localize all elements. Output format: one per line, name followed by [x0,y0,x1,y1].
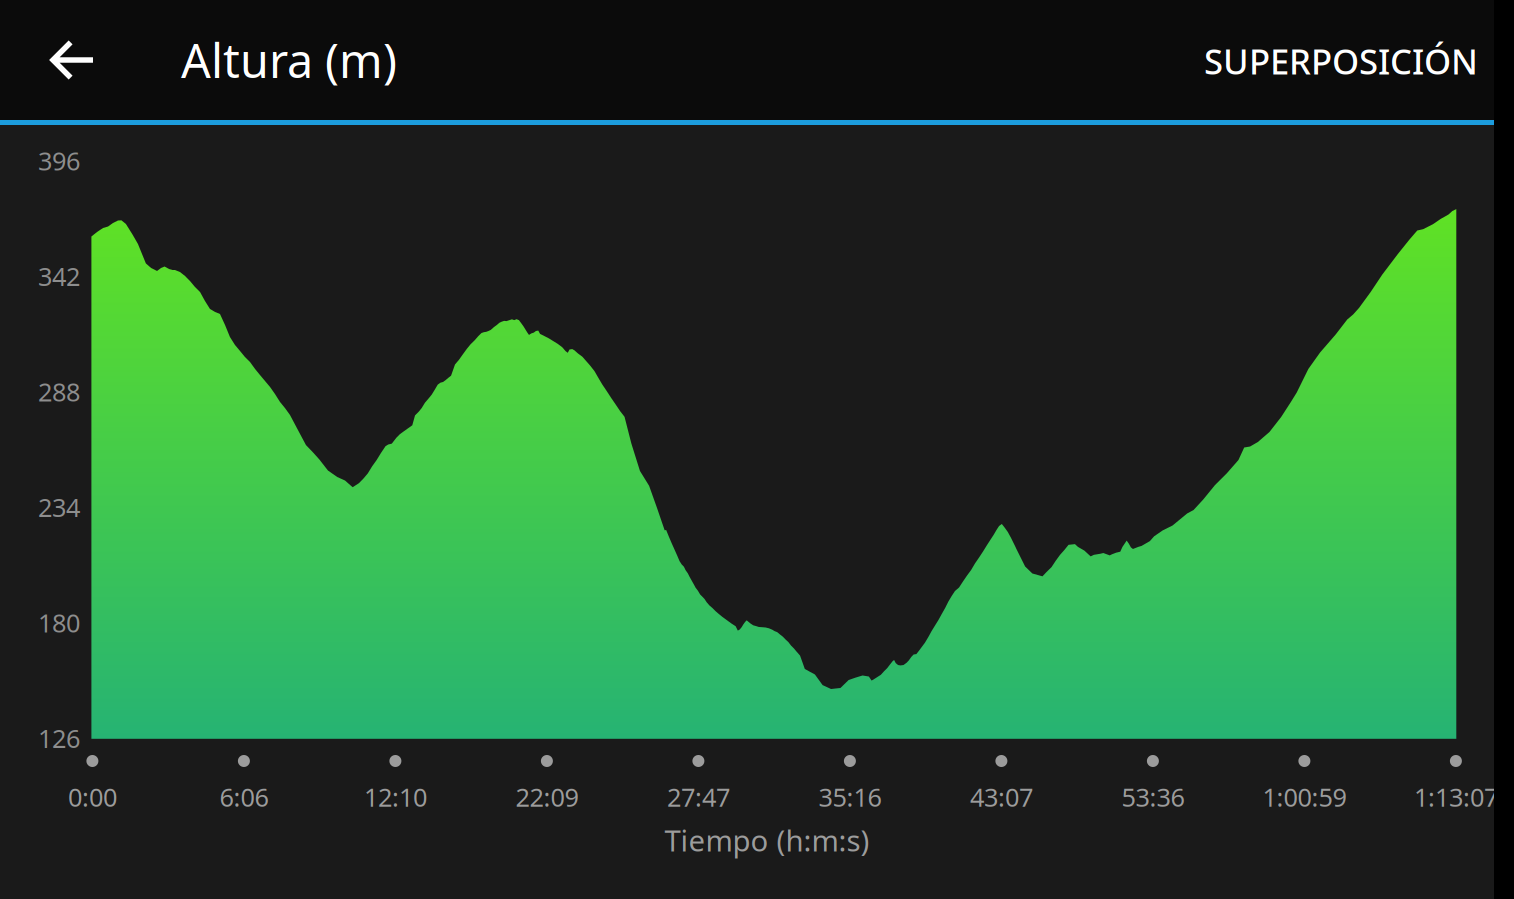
staticText: 53:36 [1121,780,1184,814]
staticText: 1:13:07 [1414,780,1498,814]
staticText: Tiempo (h:m:s) [664,820,869,859]
staticText: 180 [38,606,80,639]
staticText: 0:00 [68,780,117,814]
staticText: 1:00:59 [1262,780,1346,814]
button[interactable]: Altura (m) [181,0,581,120]
button[interactable]: Back [28,3,118,117]
staticText: 396 [38,144,80,177]
button[interactable]: SUPERPOSICIÓN [1138,1,1478,121]
staticText: 35:16 [818,780,881,814]
staticText: 126 [38,721,80,755]
staticText: 22:09 [515,780,578,814]
staticText: 43:07 [970,780,1033,814]
staticText: 27:47 [667,780,730,814]
staticText: 6:06 [219,780,268,814]
staticText: SUPERPOSICIÓN [1204,38,1478,84]
staticText: 342 [38,259,80,293]
staticText: Altura (m) [181,29,397,91]
staticText: 288 [38,375,80,408]
staticText: 234 [38,490,80,524]
staticText: 12:10 [364,780,427,814]
